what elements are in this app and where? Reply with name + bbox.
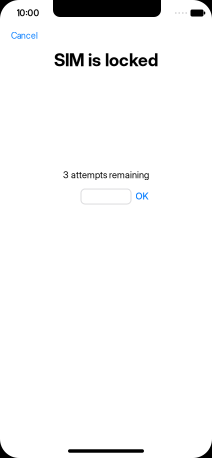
button[interactable]: Cancel [3,24,46,47]
staticText: Cancel [11,30,38,41]
button[interactable]: OK [130,185,153,207]
staticText: OK [135,190,148,202]
staticText: SIM is locked [54,49,158,70]
staticText: 10:00 [16,8,39,18]
staticText: 3 attempts remaining [63,169,149,180]
